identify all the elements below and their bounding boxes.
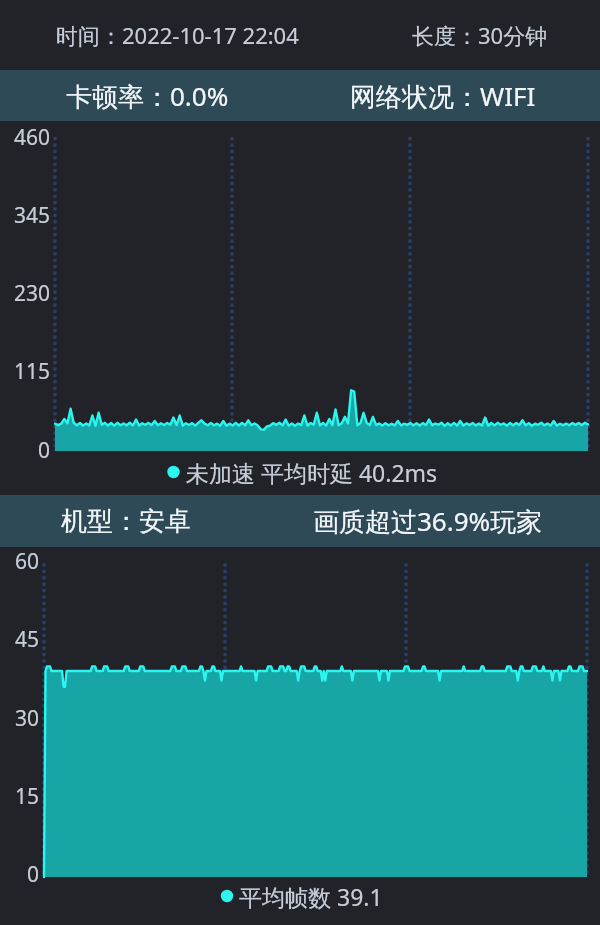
staticText: 460 xyxy=(14,123,51,151)
staticText: 卡顿率：0.0% xyxy=(66,78,229,114)
staticText: 115 xyxy=(14,357,51,385)
staticText: 345 xyxy=(14,201,51,229)
button[interactable]: 未加速 平均时延 40.2ms xyxy=(0,456,600,488)
staticText: 60 xyxy=(15,547,40,575)
button[interactable]: 机型：安卓 xyxy=(0,495,600,547)
staticText: 长度：30分钟 xyxy=(412,20,548,50)
staticText: 时间：2022-10-17 22:04 xyxy=(56,20,299,50)
staticText: 机型：安卓 xyxy=(61,505,191,538)
button[interactable]: 时间：2022-10-17 22:04 xyxy=(0,0,600,70)
staticText: 画质超过36.9%玩家 xyxy=(313,503,543,539)
staticText: 平均帧数 39.1 xyxy=(239,881,383,912)
staticText: 0 xyxy=(38,436,51,464)
staticText: 230 xyxy=(14,279,51,307)
staticText: 网络状况：WIFI xyxy=(350,78,536,114)
staticText: 45 xyxy=(15,625,40,653)
button[interactable]: 平均帧数 39.1 xyxy=(0,880,600,912)
staticText: 15 xyxy=(15,782,40,810)
staticText: 未加速 平均时延 40.2ms xyxy=(186,457,438,488)
button[interactable]: 卡顿率：0.0% xyxy=(0,70,600,121)
staticText: 0 xyxy=(27,860,40,888)
staticText: 30 xyxy=(15,704,40,732)
